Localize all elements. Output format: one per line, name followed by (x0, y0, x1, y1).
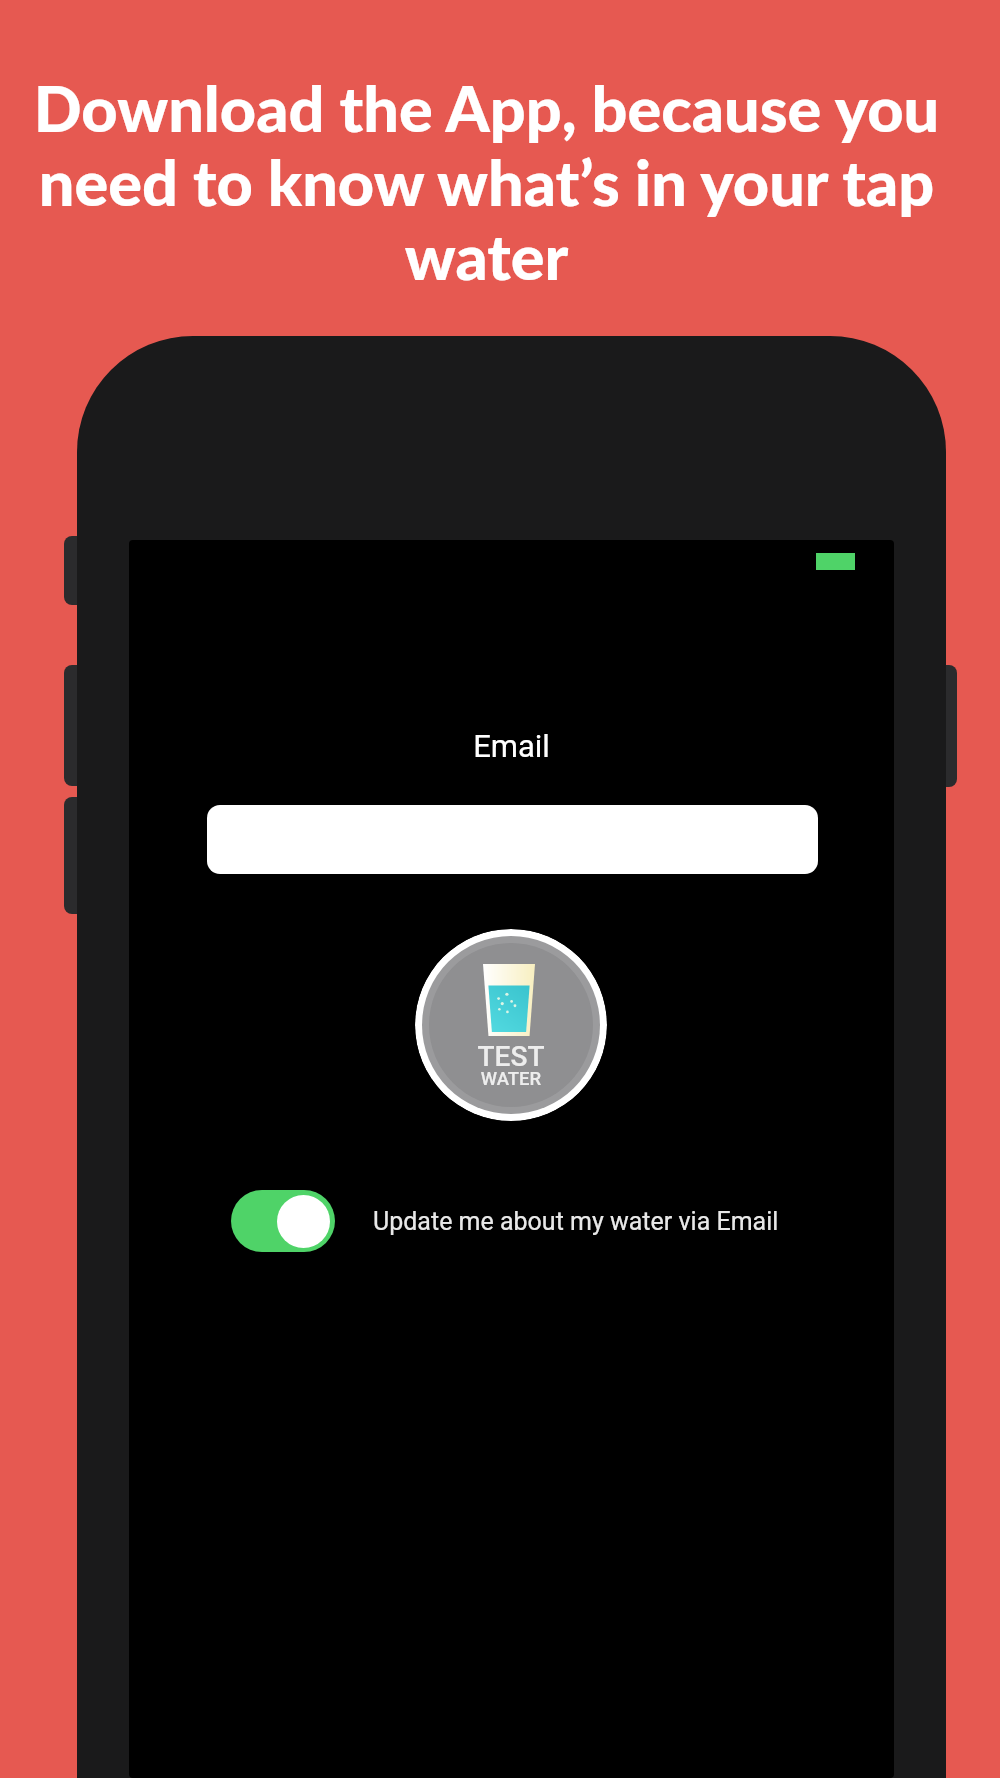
button[interactable]: Email updates on (231, 1190, 335, 1252)
staticText: Email (129, 728, 894, 764)
staticText: TEST (415, 1040, 607, 1073)
button[interactable]: Email address field (207, 805, 818, 874)
button[interactable]: Test water (415, 929, 607, 1121)
staticText: Update me about my water via Email (373, 1207, 779, 1236)
staticText: Download the App, because you need to kn… (13, 70, 960, 293)
staticText: WATER (415, 1068, 607, 1090)
